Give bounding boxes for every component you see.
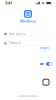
button[interactable]: Scan	[43, 79, 49, 85]
button[interactable]: Save credentials	[46, 62, 52, 66]
staticText: Forgot?	[39, 46, 49, 50]
button[interactable]: Email address	[4, 31, 52, 37]
staticText: Nimbus	[20, 18, 36, 24]
button[interactable]: Password	[4, 40, 52, 46]
staticText: Save	[40, 62, 45, 66]
staticText: 9:41	[5, 0, 12, 6]
staticText: Password	[9, 41, 21, 45]
staticText: Email address	[9, 32, 26, 36]
button[interactable]: Forgot?	[39, 46, 49, 50]
